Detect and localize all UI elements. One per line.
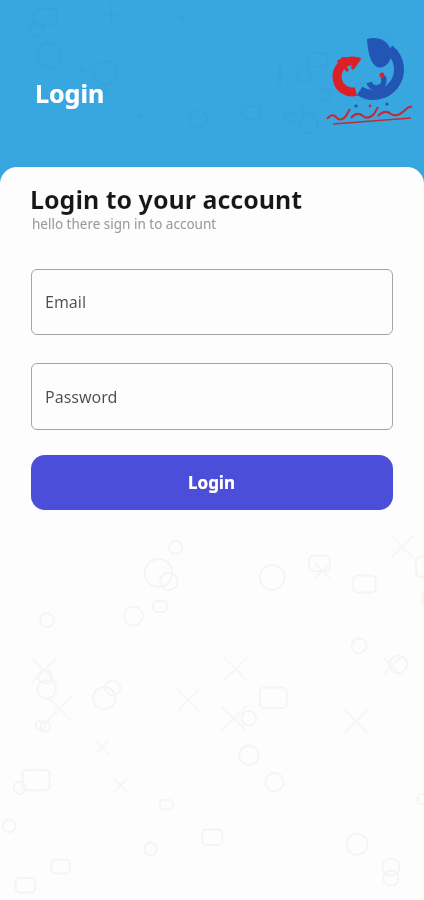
button[interactable]: Login [31, 455, 393, 510]
staticText: Email [45, 291, 87, 313]
staticText: hello there sign in to account [32, 215, 217, 233]
button[interactable]: Email [31, 269, 393, 335]
staticText: Login to your account [30, 182, 303, 216]
button[interactable]: Password [31, 363, 393, 430]
staticText: Login [35, 76, 105, 110]
staticText: Password [45, 386, 118, 408]
staticText: Login [188, 471, 236, 494]
